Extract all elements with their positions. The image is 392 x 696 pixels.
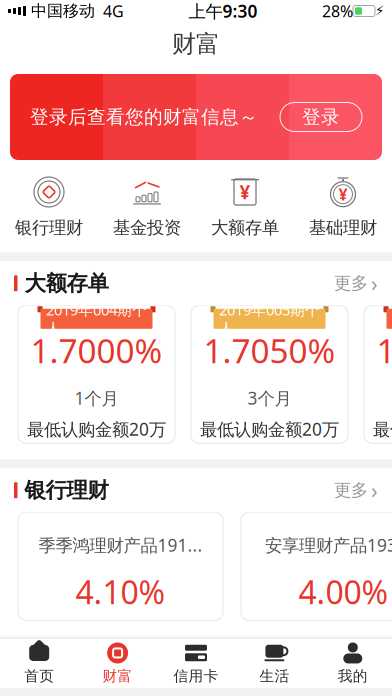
button[interactable]: 季季鸿理财产品191... [18, 512, 223, 620]
staticText: 首页 [24, 667, 54, 685]
button[interactable]: 登录 [280, 102, 362, 131]
staticText: 安享理财产品1938... [265, 533, 392, 556]
staticText: 更多 [334, 273, 368, 294]
staticText: 大额存单 [211, 217, 279, 238]
staticText: 财富 [172, 29, 220, 59]
staticText: 28% [322, 0, 353, 22]
button[interactable]: 1.7100% [364, 305, 392, 443]
button[interactable]: 财富 [78, 642, 157, 685]
staticText: 银行理财 [24, 477, 108, 503]
button[interactable]: 基金投资 [98, 176, 196, 238]
button[interactable]: 1.7000% [18, 305, 175, 443]
staticText: 1.7100% [376, 328, 392, 372]
button[interactable]: 更多 [334, 476, 378, 504]
staticText: 上午9:30 [188, 0, 257, 22]
staticText: 大额存单 [24, 270, 108, 296]
staticText: ¥ [338, 184, 347, 205]
staticText: 信用卡 [173, 667, 218, 685]
staticText: › [371, 476, 378, 504]
staticText: 1.7000% [30, 328, 162, 372]
button[interactable]: ¥ [196, 176, 294, 238]
staticText: 2019年004期个人 [46, 300, 147, 337]
staticText: 最低认购金额20万 [27, 417, 166, 440]
button[interactable]: 安享理财产品1938... [241, 512, 392, 620]
staticText: 登录 [302, 105, 340, 128]
button[interactable]: 更多 [334, 269, 378, 297]
staticText: 1.7050% [203, 328, 335, 372]
button[interactable]: 我的 [314, 642, 392, 685]
staticText: 4.10% [75, 571, 165, 613]
staticText: 财富 [103, 667, 133, 685]
staticText: 最低认购金额20万 [373, 417, 392, 440]
button[interactable]: 生活 [235, 642, 314, 685]
staticText: 基金投资 [113, 217, 181, 238]
staticText: 4G [95, 0, 124, 22]
staticText: 更多 [334, 480, 368, 501]
staticText: 4.00% [298, 571, 388, 613]
staticText: 2019年005期个人 [219, 300, 320, 337]
staticText: 最低认购金额20万 [200, 417, 339, 440]
button[interactable]: 银行理财 [0, 176, 98, 238]
staticText: 季季鸿理财产品191... [38, 533, 202, 556]
button[interactable]: 信用卡 [157, 642, 235, 685]
staticText: › [371, 269, 378, 297]
button[interactable]: 首页 [0, 642, 78, 685]
staticText: 基础理财 [309, 217, 377, 238]
staticText: 登录后查看您的财富信息～ [30, 105, 258, 128]
staticText: 3个月 [247, 386, 291, 409]
staticText: 生活 [259, 667, 289, 685]
staticText: ¥ [239, 180, 250, 204]
staticText: 我的 [338, 667, 368, 685]
staticText: 中国移动 [26, 1, 95, 21]
staticText: ⚡︎ [375, 3, 384, 18]
staticText: 银行理财 [15, 217, 83, 238]
button[interactable]: ¥ [294, 176, 392, 238]
button[interactable]: 1.7050% [191, 305, 348, 443]
staticText: 1个月 [74, 386, 118, 409]
